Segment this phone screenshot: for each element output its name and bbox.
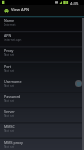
staticText: Not set <box>4 99 15 103</box>
staticText: Not set <box>4 84 15 88</box>
staticText: internet.apn <box>4 38 22 42</box>
staticText: Name <box>4 18 15 23</box>
button[interactable]: Password <box>0 92 84 107</box>
button[interactable]: MMSC <box>0 122 84 137</box>
staticText: Not set <box>4 129 15 133</box>
button[interactable]: Scroll <box>75 80 82 87</box>
staticText: Not set <box>4 114 15 118</box>
staticText: Not set <box>4 145 15 149</box>
button[interactable]: View APN <box>0 5 84 16</box>
button[interactable]: MMS proxy <box>0 138 84 150</box>
staticText: APN <box>4 33 12 38</box>
staticText: Server <box>4 109 15 114</box>
button[interactable]: Server <box>0 107 84 122</box>
staticText: Port <box>4 64 12 69</box>
staticText: Not set <box>4 53 15 57</box>
button[interactable]: Port <box>0 62 84 77</box>
staticText: Password <box>4 94 21 99</box>
staticText: Internet <box>4 23 16 27</box>
staticText: View APN <box>11 7 30 13</box>
staticText: Proxy <box>4 48 14 53</box>
staticText: MMSC <box>4 124 15 129</box>
staticText: MMS proxy <box>4 140 23 145</box>
button[interactable]: Proxy <box>0 46 84 61</box>
button[interactable]: Name <box>0 16 84 31</box>
button[interactable]: Username <box>0 77 84 92</box>
staticText: Not set <box>4 69 15 73</box>
staticText: Username <box>4 79 22 84</box>
button[interactable]: APN <box>0 31 84 46</box>
staticText: 4:35 <box>70 1 79 6</box>
